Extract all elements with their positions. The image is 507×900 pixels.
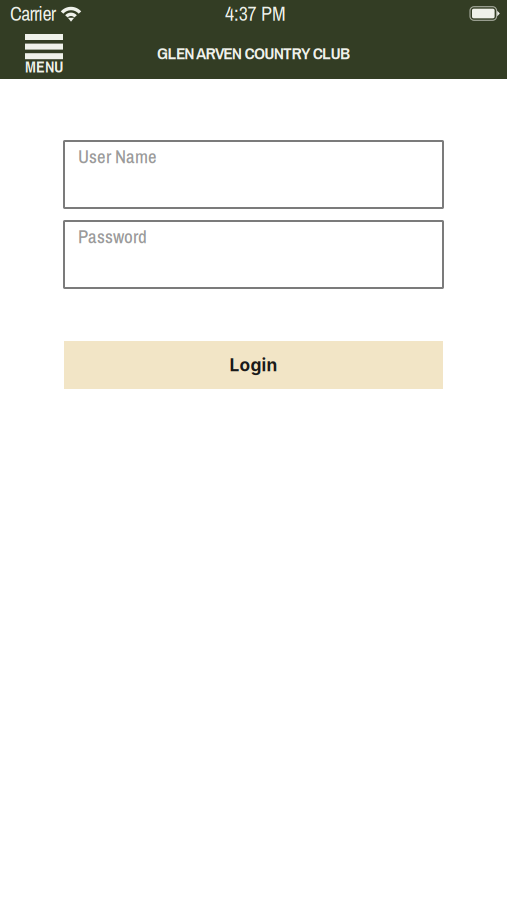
staticText: 4:37 PM [225, 0, 286, 27]
staticText: GLEN ARVEN COUNTRY CLUB [157, 41, 350, 65]
staticText: Carrier [10, 0, 56, 27]
staticText: Password [78, 224, 147, 249]
button[interactable]: Login [64, 341, 443, 389]
staticText: User Name [78, 144, 157, 169]
button[interactable]: User Name [64, 141, 443, 208]
button[interactable]: Menu [0, 27, 75, 79]
button[interactable]: Password [64, 221, 443, 288]
staticText: MENU [25, 56, 63, 77]
staticText: Login [229, 354, 277, 375]
